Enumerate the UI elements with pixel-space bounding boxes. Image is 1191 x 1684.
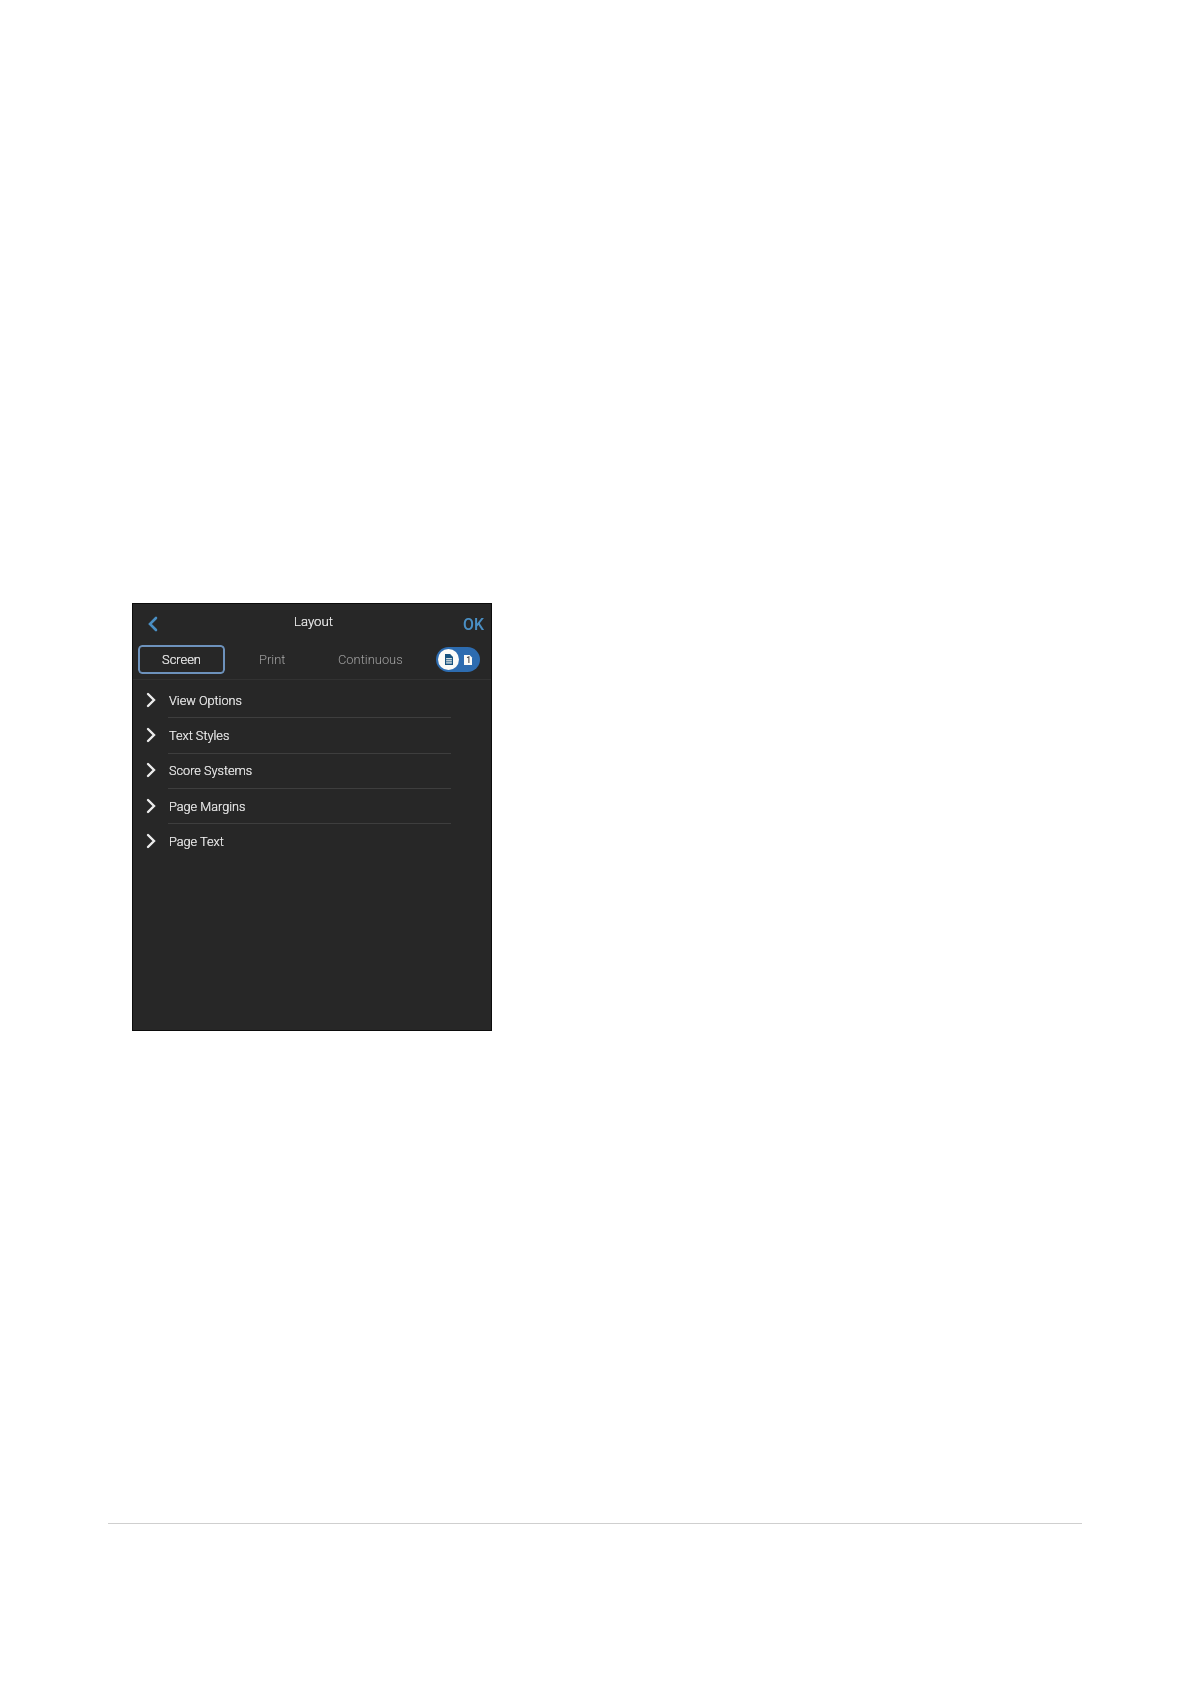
staticText: Text Styles [169,728,230,743]
staticText: Score Systems [169,763,253,778]
staticText: Continuous [338,652,403,667]
staticText: Layout [294,614,333,629]
button[interactable]: Page Margins [132,789,492,824]
button[interactable]: Page layout mode [436,647,480,672]
button[interactable]: Screen [138,645,225,674]
staticText: View Options [169,693,242,708]
staticText: OK [463,615,484,634]
button[interactable]: Score Systems [132,753,492,788]
button[interactable]: Page Text [132,824,492,859]
button[interactable]: Continuous [322,645,418,674]
button[interactable]: Text Styles [132,718,492,753]
button[interactable]: OK [457,610,490,638]
staticText: Screen [162,652,201,667]
staticText: Print [259,652,286,667]
button[interactable]: Print [240,645,304,674]
staticText: Page Text [169,834,224,849]
button[interactable]: Back [136,607,170,641]
staticText: 1 [466,655,471,665]
staticText: Page Margins [169,799,246,814]
button[interactable]: View Options [132,683,492,718]
